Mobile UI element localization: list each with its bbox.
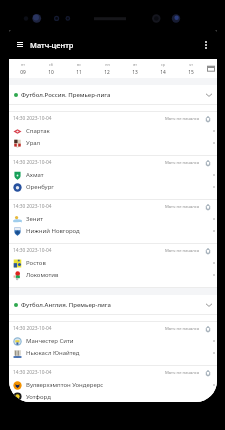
button[interactable]: Notification [203,324,213,334]
staticText: Матч-центр [30,40,74,50]
staticText: ср [161,62,165,67]
button[interactable]: Футбол.Англия. Премьер-лига [9,295,217,314]
button[interactable]: пт [9,59,37,78]
staticText: Зенит [26,215,43,223]
staticText: вс [77,62,81,67]
button[interactable]: More options [199,38,213,52]
button[interactable]: 14:30 2023-10-04 [9,244,217,288]
button[interactable]: Футбол.Россия. Премьер-лига [9,85,217,104]
staticText: Вулверхэмптон Уондерерс [26,381,104,389]
staticText: 14 [160,69,166,76]
staticText: 14:30 2023-10-04 [13,159,52,166]
staticText: Уотфорд [26,393,51,401]
staticText: Матч не начался [165,160,200,166]
button[interactable]: вт [121,59,149,78]
button[interactable]: Notification [203,368,213,378]
staticText: Урал [26,139,41,147]
button[interactable]: 14:30 2023-10-04 [9,112,217,156]
staticText: Ростов [26,259,46,267]
staticText: Ахмат [26,171,44,179]
staticText: 14:30 2023-10-04 [13,247,52,254]
staticText: 11 [76,69,82,76]
staticText: Оренбург [26,183,54,191]
button[interactable]: Notification [203,202,213,212]
staticText: 14:30 2023-10-04 [13,325,52,332]
staticText: 14:30 2023-10-04 [13,203,52,210]
button[interactable]: Notification [203,114,213,124]
staticText: 09 [20,69,26,76]
staticText: 14:30 2023-10-04 [13,369,52,376]
button[interactable]: сб [37,59,65,78]
staticText: Футбол.Англия. Премьер-лига [21,301,111,309]
staticText: Ньюкасл Юнайтед [26,349,80,357]
staticText: чт [189,62,193,67]
staticText: Матч не начался [165,248,200,254]
staticText: 10 [48,69,54,76]
button[interactable]: 14:30 2023-10-04 [9,200,217,244]
staticText: Спартак [26,127,50,135]
button[interactable]: Menu [13,38,26,51]
staticText: 13 [132,69,138,76]
button[interactable]: чт [177,59,205,78]
button[interactable]: 14:30 2023-10-04 [9,322,217,366]
button[interactable]: Notification [203,246,213,256]
button[interactable]: Notification [203,158,213,168]
staticText: Локомотив [26,271,59,279]
staticText: Нижний Новгород [26,227,80,235]
staticText: пт [21,62,25,67]
staticText: Матч не начался [165,326,200,332]
staticText: вт [133,62,137,67]
button[interactable]: 14:30 2023-10-04 [9,156,217,200]
staticText: Матч не начался [165,370,200,376]
staticText: 15 [188,69,194,76]
button[interactable]: пн [93,59,121,78]
button[interactable]: 14:30 2023-10-04 [9,366,217,402]
staticText: 14:30 2023-10-04 [13,115,52,122]
staticText: пн [105,62,110,67]
button[interactable]: вс [65,59,93,78]
staticText: сб [49,62,53,67]
staticText: Матч не начался [165,204,200,210]
staticText: Матч не начался [165,116,200,122]
staticText: Футбол.Россия. Премьер-лига [21,91,111,99]
staticText: Манчестер Сити [26,337,74,345]
button[interactable]: ср [149,59,177,78]
button[interactable]: Calendar [205,59,217,78]
staticText: 12 [104,69,110,76]
